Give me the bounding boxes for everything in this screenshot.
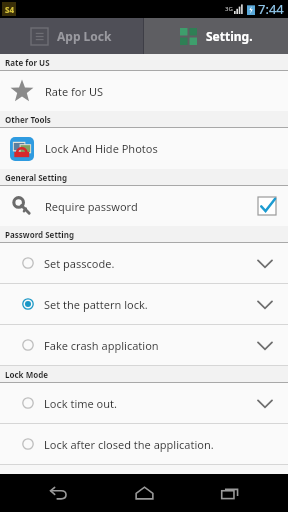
button[interactable]: Require password (0, 186, 288, 226)
staticText: Set the pattern lock. (44, 297, 148, 312)
staticText: Require password (45, 199, 138, 214)
button[interactable]: Lock after closed the application. (0, 424, 288, 464)
button[interactable]: Rate for US (0, 71, 288, 111)
button[interactable]: Back (32, 474, 86, 512)
button[interactable]: Fake crash application (0, 325, 288, 365)
staticText: Lock time out. (44, 396, 117, 411)
staticText: Set passcode. (44, 256, 115, 271)
staticText: Fake crash application (44, 338, 159, 353)
button[interactable]: Set the pattern lock. (0, 284, 288, 324)
staticText: Other Tools (5, 114, 51, 125)
staticText: Rate for US (45, 84, 103, 99)
staticText: 3G (225, 5, 233, 13)
button[interactable]: Set passcode. (0, 243, 288, 283)
button[interactable]: Recent apps (203, 474, 257, 512)
staticText: Rate for US (5, 57, 50, 68)
staticText: Lock Mode (5, 369, 49, 380)
staticText: 7:44 (258, 0, 284, 18)
staticText: Lock And Hide Photos (45, 141, 158, 156)
staticText: S4 (5, 4, 14, 15)
button[interactable]: Lock time out. (0, 383, 288, 423)
staticText: App Lock (57, 28, 112, 44)
staticText: Setting. (206, 28, 253, 44)
staticText: Lock after closed the application. (44, 437, 214, 452)
button[interactable]: Setting. (144, 18, 288, 54)
staticText: General Setting (5, 172, 67, 183)
staticText: Password Setting (5, 229, 74, 240)
button[interactable]: Home (117, 474, 171, 512)
button[interactable]: Lock And Hide Photos (0, 128, 288, 169)
button[interactable]: App Lock (0, 18, 143, 54)
